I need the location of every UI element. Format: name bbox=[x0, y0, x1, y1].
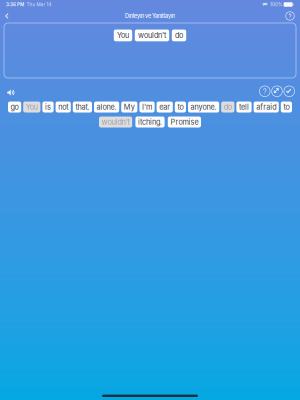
staticText: not bbox=[58, 103, 68, 111]
staticText: tell bbox=[239, 103, 249, 111]
button[interactable]: go bbox=[8, 101, 21, 112]
button[interactable]: that. bbox=[73, 101, 92, 112]
staticText: My bbox=[124, 103, 135, 111]
button[interactable]: Check answer bbox=[284, 86, 294, 97]
staticText: alone. bbox=[97, 103, 117, 111]
button[interactable]: You bbox=[114, 29, 132, 41]
staticText: 3:36 PM bbox=[6, 2, 24, 7]
staticText: to bbox=[283, 103, 289, 111]
staticText: You bbox=[117, 31, 129, 40]
button[interactable]: Back bbox=[2, 9, 12, 23]
button[interactable]: to bbox=[281, 101, 292, 112]
button[interactable]: Promise bbox=[168, 116, 201, 127]
staticText: go bbox=[11, 103, 19, 111]
staticText: do bbox=[224, 103, 232, 111]
button[interactable]: anyone. bbox=[188, 101, 219, 112]
staticText: ear bbox=[159, 103, 170, 111]
staticText: Thu Mar 14 bbox=[26, 2, 51, 7]
button[interactable]: itching. bbox=[135, 116, 165, 127]
button[interactable]: do bbox=[172, 29, 186, 41]
staticText: afraid bbox=[256, 103, 276, 111]
staticText: 100% bbox=[270, 2, 282, 7]
staticText: You bbox=[26, 103, 38, 111]
button[interactable]: Use keyboard bbox=[272, 86, 282, 97]
button[interactable]: to bbox=[175, 101, 186, 112]
staticText: Dinleyin ve Yanıtlayın bbox=[125, 13, 175, 19]
button[interactable]: is bbox=[42, 101, 54, 112]
button[interactable]: You bbox=[23, 101, 40, 112]
staticText: wouldn't bbox=[138, 31, 166, 40]
staticText: to bbox=[177, 103, 183, 111]
button[interactable]: Hint bbox=[259, 86, 270, 97]
staticText: do bbox=[175, 31, 183, 40]
button[interactable]: wouldn't bbox=[135, 29, 169, 41]
button[interactable]: I'm bbox=[139, 101, 155, 112]
button[interactable]: alone. bbox=[94, 101, 119, 112]
staticText: anyone. bbox=[191, 103, 217, 111]
button[interactable]: wouldn't bbox=[99, 116, 132, 127]
button[interactable]: not bbox=[56, 101, 71, 112]
staticText: that. bbox=[75, 103, 89, 111]
button[interactable]: tell bbox=[236, 101, 252, 112]
button[interactable]: My bbox=[121, 101, 137, 112]
staticText: Promise bbox=[170, 118, 198, 126]
button[interactable]: afraid bbox=[254, 101, 279, 112]
staticText: is bbox=[45, 103, 51, 111]
staticText: itching. bbox=[138, 118, 162, 126]
button[interactable]: Help bbox=[282, 9, 298, 23]
button[interactable]: Play audio bbox=[5, 87, 17, 99]
button[interactable]: do bbox=[221, 101, 234, 112]
button[interactable]: ear bbox=[157, 101, 173, 112]
staticText: I'm bbox=[142, 103, 152, 111]
staticText: wouldn't bbox=[102, 118, 130, 126]
